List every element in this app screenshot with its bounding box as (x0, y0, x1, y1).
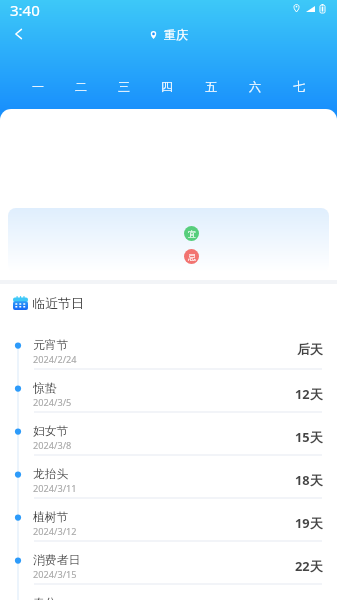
staticText: 植树节 (33, 510, 69, 525)
staticText: 22天 (295, 557, 323, 574)
button[interactable]: 七 (277, 79, 321, 93)
staticText: 宜 (188, 229, 196, 239)
staticText: 龙抬头 (33, 467, 69, 482)
button[interactable]: 春分 (0, 585, 337, 600)
button[interactable]: 妇女节 (0, 413, 337, 456)
staticText: 重庆 (164, 27, 188, 42)
button[interactable]: 四 (145, 79, 189, 93)
staticText: 五 (205, 79, 217, 93)
staticText: 2024/3/11 (33, 482, 77, 495)
button[interactable]: 六 (233, 79, 277, 93)
staticText: 后天 (297, 342, 323, 358)
staticText: 六 (249, 79, 261, 93)
button[interactable]: 宜 (184, 226, 199, 241)
staticText: 三 (118, 79, 130, 93)
staticText: 忌 (188, 252, 196, 262)
staticText: 消费者日 (33, 553, 81, 568)
staticText: 2024/2/24 (33, 353, 77, 366)
button[interactable]: 消费者日 (0, 542, 337, 585)
staticText: 二 (75, 79, 87, 93)
staticText: 19天 (295, 514, 323, 531)
button[interactable]: 一 (16, 79, 59, 93)
button[interactable]: 二 (59, 79, 102, 93)
staticText: 18天 (295, 471, 323, 488)
button[interactable]: Back (5, 20, 32, 47)
staticText: 春分 (33, 596, 57, 600)
button[interactable]: 龙抬头 (0, 456, 337, 499)
button[interactable]: 元宵节 (0, 327, 337, 370)
staticText: 2024/3/8 (33, 439, 72, 452)
staticText: 2024/3/15 (33, 568, 77, 581)
staticText: 临近节日 (32, 295, 84, 311)
staticText: 2024/3/5 (33, 396, 72, 409)
button[interactable]: 忌 (184, 249, 199, 264)
staticText: 3:40 (10, 0, 40, 20)
button[interactable]: 惊蛰 (0, 370, 337, 413)
staticText: 惊蛰 (33, 381, 57, 396)
staticText: 一 (32, 79, 44, 93)
staticText: 12天 (295, 385, 323, 402)
staticText: 15天 (295, 428, 323, 445)
staticText: 2024/3/12 (33, 525, 77, 538)
button[interactable]: 五 (189, 79, 233, 93)
staticText: 四 (161, 79, 173, 93)
button[interactable]: 重庆 (150, 27, 188, 42)
staticText: 元宵节 (33, 338, 69, 353)
staticText: 妇女节 (33, 424, 69, 439)
button[interactable]: 植树节 (0, 499, 337, 542)
button[interactable]: 三 (102, 79, 145, 93)
staticText: 七 (293, 79, 305, 93)
